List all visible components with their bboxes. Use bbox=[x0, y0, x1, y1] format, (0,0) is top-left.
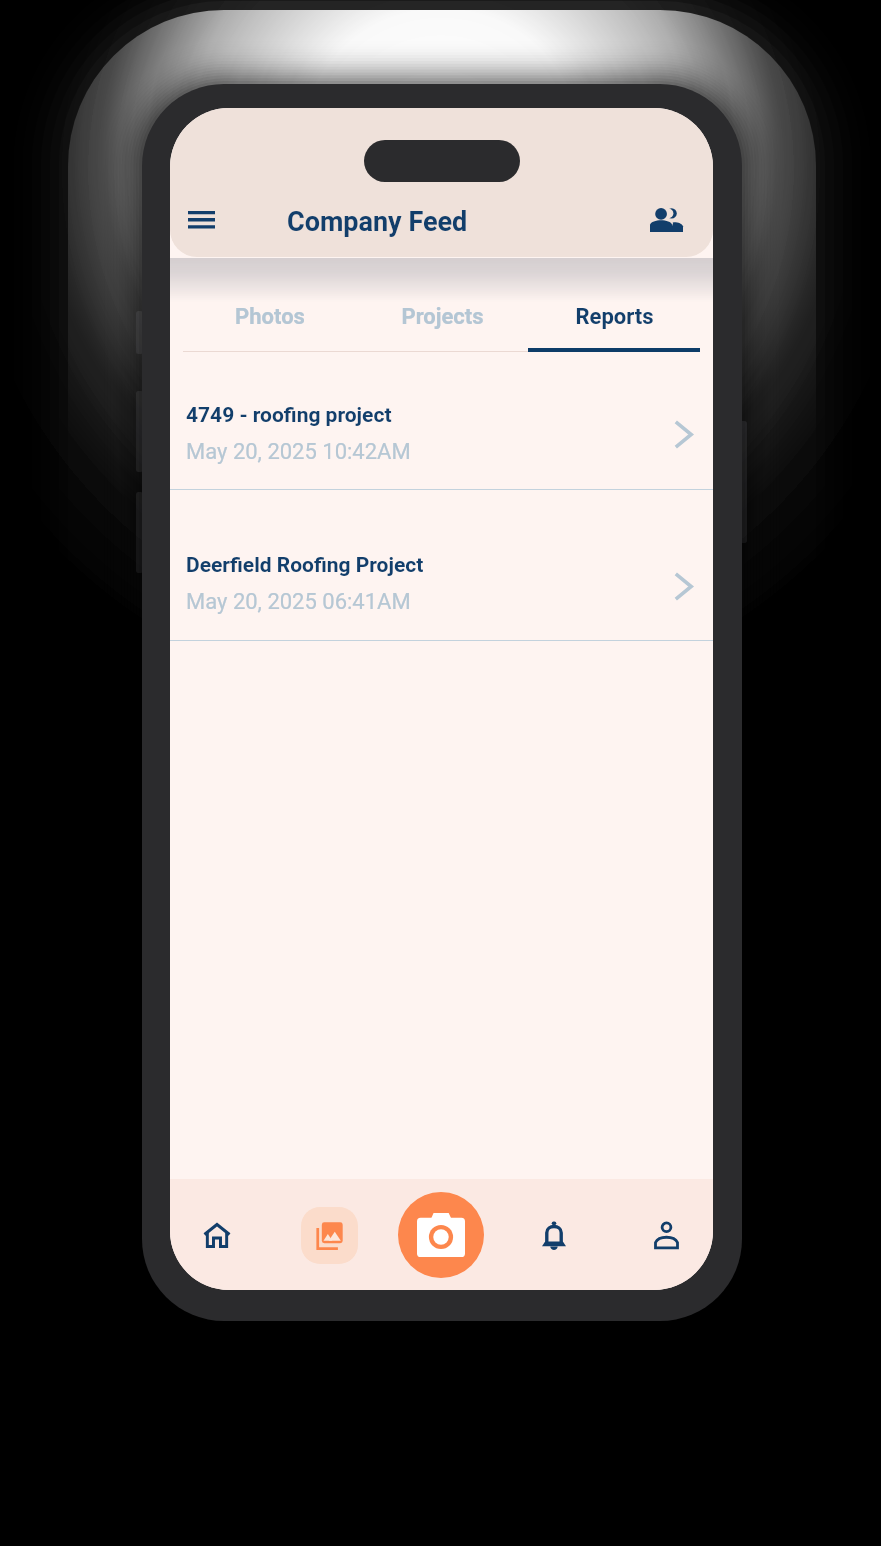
button[interactable]: Profile bbox=[636, 1205, 696, 1265]
button[interactable]: Open navigation menu bbox=[175, 194, 227, 246]
button[interactable]: Notifications bbox=[524, 1205, 584, 1265]
staticText: May 20, 2025 10:42AM bbox=[186, 439, 411, 465]
staticText: Reports bbox=[575, 304, 654, 330]
button[interactable]: Team members bbox=[640, 194, 692, 246]
button[interactable]: Reports bbox=[528, 257, 700, 352]
staticText: Projects bbox=[401, 304, 484, 330]
staticText: Company Feed bbox=[287, 206, 468, 238]
button[interactable]: Photo gallery bbox=[299, 1205, 359, 1265]
button[interactable]: Photos bbox=[183, 257, 356, 352]
button[interactable]: 4749 - roofing project bbox=[170, 352, 713, 489]
button[interactable]: Deerfield Roofing Project bbox=[170, 490, 713, 640]
button[interactable]: Projects bbox=[356, 257, 528, 352]
button[interactable]: Home bbox=[187, 1205, 247, 1265]
staticText: Photos bbox=[235, 304, 305, 330]
staticText: May 20, 2025 06:41AM bbox=[186, 589, 411, 615]
staticText: Deerfield Roofing Project bbox=[186, 553, 424, 578]
staticText: 4749 - roofing project bbox=[186, 403, 392, 428]
button[interactable]: Take photo bbox=[398, 1192, 484, 1278]
